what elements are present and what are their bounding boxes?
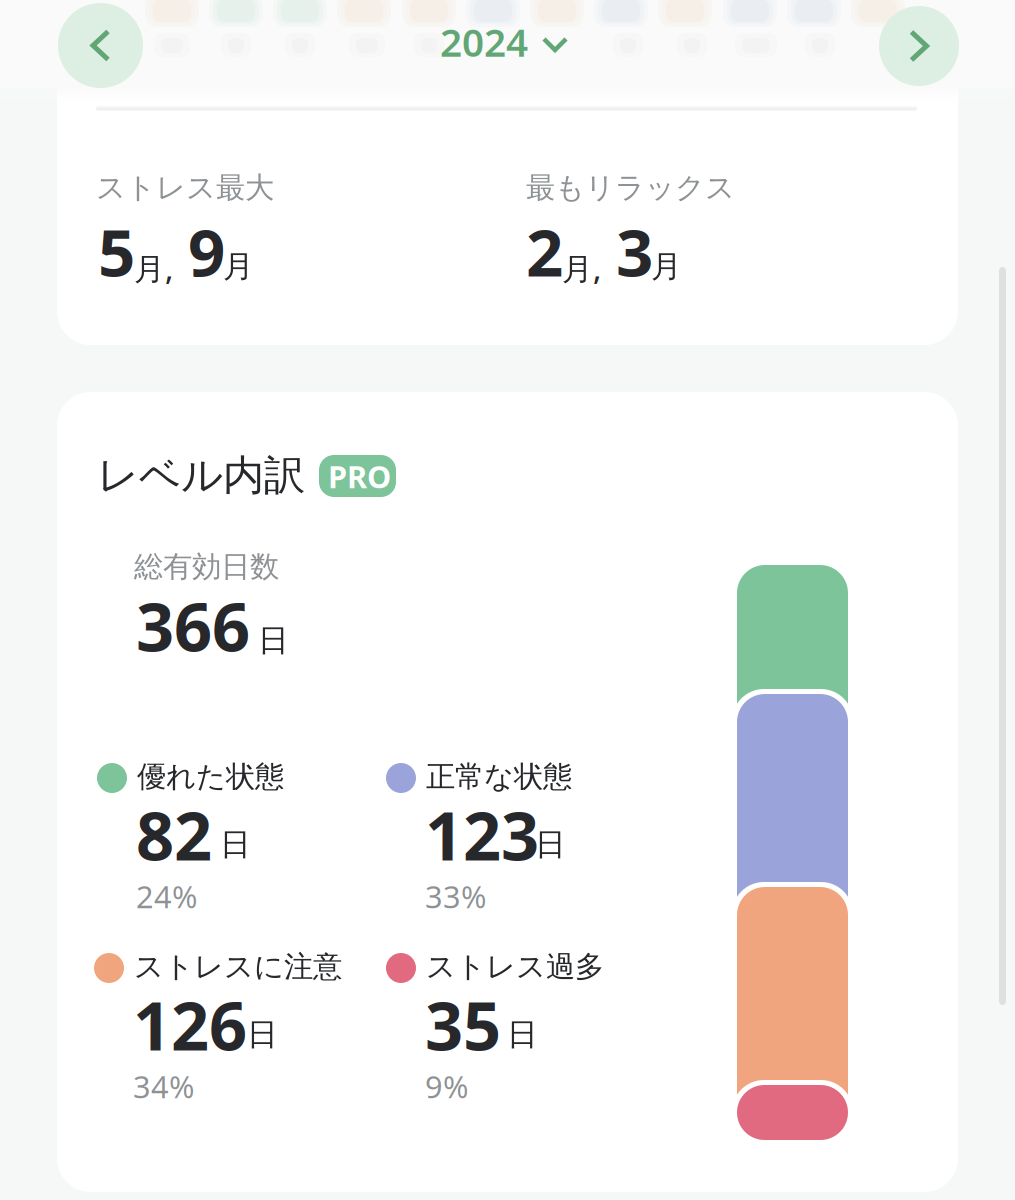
staticText: 総有効日数 <box>134 549 279 585</box>
staticText: 366 <box>136 581 250 670</box>
button[interactable]: 2024 <box>440 20 568 68</box>
staticText: 24% <box>136 876 197 917</box>
staticText: 月 <box>223 248 254 285</box>
staticText: 3 <box>616 208 653 294</box>
staticText: 123 <box>425 790 539 879</box>
staticText: 日 <box>507 1016 538 1053</box>
staticText: 月 <box>651 248 682 285</box>
staticText: 5 <box>98 208 135 294</box>
staticText: 優れた状態 <box>137 759 284 795</box>
staticText: 2 <box>526 208 563 294</box>
staticText: 日 <box>258 622 289 659</box>
staticText: 82 <box>136 790 212 879</box>
staticText: レベル内訳 <box>97 450 305 501</box>
staticText: 正常な状態 <box>426 759 572 795</box>
staticText: ストレスに注意 <box>134 949 342 985</box>
staticText: PRO <box>328 456 391 497</box>
staticText: 最もリラックス <box>526 170 735 206</box>
staticText: 2024 <box>440 16 528 67</box>
staticText: 9% <box>425 1066 468 1107</box>
staticText: 日 <box>247 1016 278 1053</box>
staticText: 33% <box>425 876 486 917</box>
staticText: 9 <box>188 208 225 294</box>
button[interactable]: 前の年 <box>58 3 143 88</box>
button[interactable]: 次の年 <box>879 6 959 86</box>
staticText: ストレス最大 <box>96 170 274 206</box>
staticText: 月, <box>562 248 601 288</box>
staticText: 35 <box>425 980 501 1069</box>
staticText: 月, <box>134 248 173 288</box>
staticText: 日 <box>535 826 566 863</box>
staticText: ストレス過多 <box>426 949 604 985</box>
staticText: 126 <box>133 980 247 1069</box>
staticText: 日 <box>220 826 251 863</box>
staticText: 34% <box>133 1066 194 1107</box>
